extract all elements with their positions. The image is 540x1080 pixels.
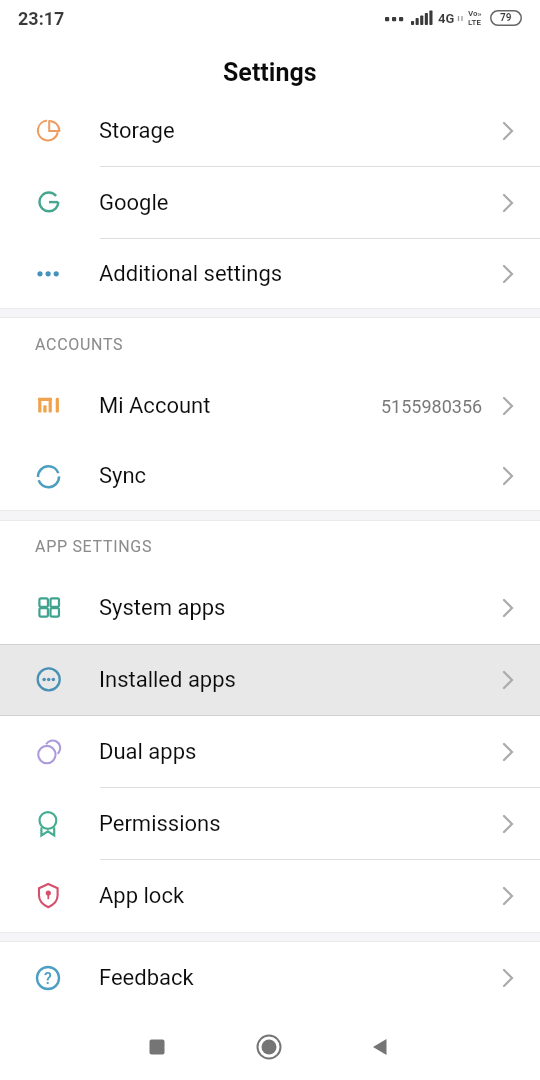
button[interactable] [233,1014,305,1080]
staticText: 4G [438,11,455,26]
staticText: Vo» [468,9,482,18]
button[interactable]: Installed apps [0,644,540,716]
staticText: ACCOUNTS [35,335,124,354]
staticText: ? [44,969,52,988]
staticText: 79 [500,12,512,24]
staticText: 5155980356 [381,396,483,417]
staticText: System apps [99,595,226,621]
button[interactable]: Sync [0,442,540,510]
staticText: Feedback [99,965,194,991]
button[interactable]: Storage [0,95,540,167]
button[interactable]: Google [0,167,540,239]
staticText: LTE [468,18,481,27]
button[interactable]: Mi Account [0,370,540,442]
button[interactable]: Additional settings [0,239,540,308]
staticText: App lock [99,883,185,909]
button[interactable] [121,1014,193,1080]
staticText: Mi Account [99,393,211,419]
button[interactable]: App lock [0,860,540,932]
staticText: Storage [99,118,175,144]
button[interactable]: System apps [0,572,540,644]
button[interactable] [344,1014,416,1080]
staticText: APP SETTINGS [35,537,153,556]
staticText: Dual apps [99,739,197,765]
staticText: Settings [223,58,317,87]
button[interactable]: Permissions [0,788,540,860]
staticText: Installed apps [99,667,236,693]
button[interactable]: ? [0,942,540,1014]
staticText: Additional settings [99,261,283,287]
staticText: Sync [99,463,147,489]
button[interactable]: Dual apps [0,716,540,788]
staticText: 23:17 [18,8,65,29]
staticText: Google [99,190,169,216]
staticText: Permissions [99,811,221,837]
